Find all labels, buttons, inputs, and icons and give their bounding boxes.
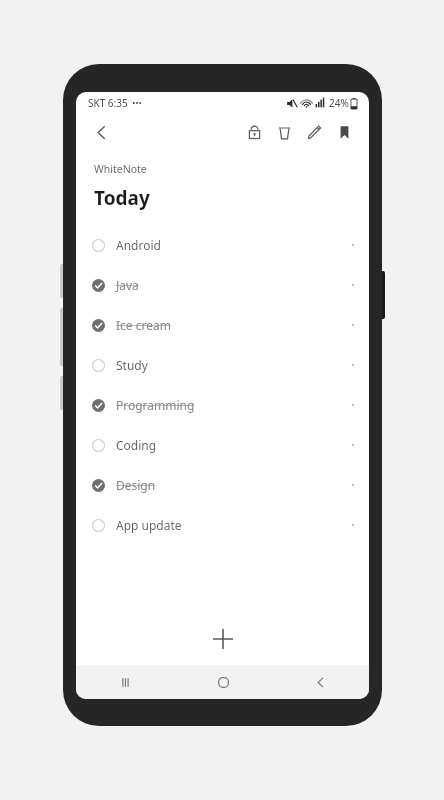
staticText: SKT 6:35	[88, 96, 128, 110]
staticText: Java	[116, 277, 139, 293]
button[interactable]: App update	[76, 505, 369, 545]
button[interactable]: Bookmark	[329, 117, 359, 147]
button[interactable]: Study	[76, 345, 369, 385]
button[interactable]: Coding	[76, 425, 369, 465]
button[interactable]: Android	[76, 225, 369, 265]
button[interactable]: Lock	[239, 117, 269, 147]
staticText: Programming	[116, 397, 195, 413]
staticText: Coding	[116, 437, 157, 453]
staticText: Ice cream	[116, 317, 171, 333]
button[interactable]: Recents	[105, 665, 145, 699]
staticText: Android	[116, 237, 161, 253]
button[interactable]: Design	[76, 465, 369, 505]
button[interactable]: Edit	[299, 117, 329, 147]
button[interactable]: Programming	[76, 385, 369, 425]
button[interactable]: Add note	[203, 619, 243, 659]
button[interactable]: Java	[76, 265, 369, 305]
staticText: WhiteNote	[94, 162, 147, 176]
button[interactable]: Back	[86, 117, 116, 147]
button[interactable]: Home	[203, 665, 243, 699]
staticText: Today	[94, 185, 150, 211]
staticText: Study	[116, 357, 148, 373]
button[interactable]: Back	[300, 665, 340, 699]
button[interactable]: Delete	[269, 117, 299, 147]
staticText: Design	[116, 477, 156, 493]
staticText: 24%	[329, 96, 349, 110]
button[interactable]: Ice cream	[76, 305, 369, 345]
staticText: App update	[116, 517, 182, 533]
